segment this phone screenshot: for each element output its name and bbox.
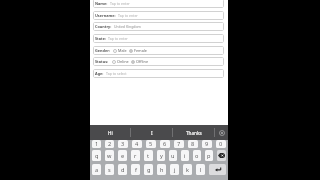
button[interactable]: u: [169, 150, 177, 161]
button[interactable]: e: [118, 150, 127, 161]
staticText: s: [108, 166, 111, 174]
staticText: h: [160, 166, 164, 174]
button[interactable]: a: [92, 164, 101, 175]
staticText: Username:: [95, 13, 116, 18]
button[interactable]: Male: [113, 48, 127, 53]
staticText: f: [135, 166, 137, 174]
staticText: k: [186, 166, 189, 174]
staticText: Female: [134, 48, 147, 53]
staticText: 7: [177, 140, 181, 148]
staticText: q: [95, 152, 99, 160]
button[interactable]: Hi: [90, 125, 130, 140]
button[interactable]: Status:: [93, 57, 224, 66]
staticText: Tap to enter: [118, 13, 138, 18]
button[interactable]: 7: [174, 140, 184, 148]
staticText: Name:: [95, 1, 108, 6]
button[interactable]: Country:: [93, 22, 224, 31]
button[interactable]: y: [157, 150, 165, 161]
staticText: e: [121, 152, 125, 160]
staticText: Male: [118, 48, 127, 53]
staticText: Thanks: [186, 130, 202, 136]
staticText: State:: [95, 36, 106, 41]
staticText: Hi: [108, 130, 113, 136]
staticText: i: [184, 152, 186, 160]
button[interactable]: Offline: [131, 59, 149, 64]
staticText: Status:: [95, 59, 109, 64]
button[interactable]: 0: [216, 140, 226, 148]
button[interactable]: I: [131, 125, 172, 140]
button[interactable]: j: [170, 164, 179, 175]
staticText: u: [171, 152, 175, 160]
button[interactable]: Name:: [93, 0, 224, 8]
staticText: 2: [108, 140, 112, 148]
staticText: 5: [149, 140, 153, 148]
staticText: a: [95, 166, 99, 174]
button[interactable]: i: [181, 150, 189, 161]
button[interactable]: l: [196, 164, 205, 175]
staticText: United Kingdom: [114, 24, 141, 29]
button[interactable]: d: [118, 164, 127, 175]
button[interactable]: Online: [112, 59, 129, 64]
staticText: o: [195, 152, 199, 160]
button[interactable]: 6: [160, 140, 170, 148]
button[interactable]: 2: [105, 140, 114, 148]
staticText: g: [147, 166, 151, 174]
staticText: r: [134, 152, 137, 160]
button[interactable]: s: [105, 164, 114, 175]
staticText: d: [121, 166, 125, 174]
staticText: Country:: [95, 24, 112, 29]
button[interactable]: w: [105, 150, 114, 161]
staticText: t: [147, 152, 150, 160]
button[interactable]: Gender:: [93, 46, 224, 55]
staticText: Offline: [136, 59, 149, 64]
button[interactable]: Female: [129, 48, 147, 53]
button[interactable]: Age:: [93, 69, 224, 78]
button[interactable]: f: [131, 164, 140, 175]
staticText: I: [151, 130, 153, 136]
button[interactable]: 8: [188, 140, 198, 148]
button[interactable]: Close suggestions: [215, 125, 228, 140]
button[interactable]: 9: [202, 140, 212, 148]
staticText: 1: [95, 140, 99, 148]
staticText: Age:: [95, 71, 104, 76]
staticText: w: [107, 152, 112, 160]
button[interactable]: Username:: [93, 11, 224, 20]
staticText: 9: [205, 140, 209, 148]
button[interactable]: k: [183, 164, 192, 175]
button[interactable]: 5: [146, 140, 156, 148]
staticText: Online: [117, 59, 129, 64]
staticText: Gender:: [95, 48, 110, 53]
button[interactable]: 1: [92, 140, 101, 148]
staticText: 3: [121, 140, 125, 148]
staticText: 4: [135, 140, 139, 148]
staticText: 6: [163, 140, 167, 148]
button[interactable]: p: [205, 150, 213, 161]
button[interactable]: o: [193, 150, 201, 161]
button[interactable]: 3: [118, 140, 128, 148]
button[interactable]: Enter: [209, 164, 226, 175]
staticText: l: [200, 166, 202, 174]
button[interactable]: t: [144, 150, 153, 161]
staticText: 0: [219, 140, 223, 148]
button[interactable]: 4: [132, 140, 142, 148]
button[interactable]: Thanks: [173, 125, 214, 140]
button[interactable]: q: [92, 150, 101, 161]
staticText: p: [207, 152, 211, 160]
staticText: Tap to enter: [108, 36, 128, 41]
staticText: Tap to select: [106, 71, 127, 76]
button[interactable]: State:: [93, 34, 224, 43]
staticText: 8: [191, 140, 195, 148]
button[interactable]: Backspace: [217, 150, 226, 161]
button[interactable]: r: [131, 150, 140, 161]
staticText: y: [160, 152, 163, 160]
button[interactable]: g: [144, 164, 153, 175]
staticText: j: [174, 166, 176, 174]
staticText: Tap to enter: [110, 1, 130, 6]
button[interactable]: h: [157, 164, 166, 175]
